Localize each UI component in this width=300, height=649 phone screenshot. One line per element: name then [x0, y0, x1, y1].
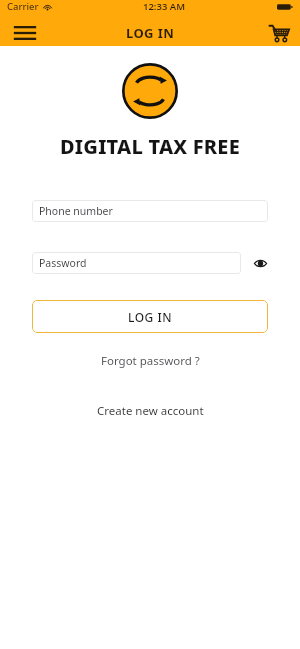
- staticText: 12:33 AM: [143, 0, 186, 13]
- staticText: Forgot password ?: [101, 353, 200, 369]
- staticText: LOG IN: [126, 24, 175, 42]
- button[interactable]: Shopping cart: [267, 22, 291, 44]
- button[interactable]: Forgot password ?: [89, 348, 212, 374]
- staticText: Phone number: [39, 204, 113, 218]
- button[interactable]: Create new account: [85, 398, 216, 424]
- button[interactable]: Phone number: [32, 200, 268, 222]
- staticText: Create new account: [97, 403, 204, 419]
- button[interactable]: Password: [32, 252, 241, 274]
- staticText: Password: [39, 256, 87, 270]
- button[interactable]: LOG IN: [32, 300, 268, 333]
- staticText: LOG IN: [128, 309, 172, 325]
- staticText: Carrier: [7, 0, 39, 13]
- button[interactable]: Show password: [250, 253, 270, 273]
- staticText: DIGITAL TAX FREE: [60, 133, 240, 160]
- button[interactable]: Open navigation menu: [13, 22, 37, 44]
